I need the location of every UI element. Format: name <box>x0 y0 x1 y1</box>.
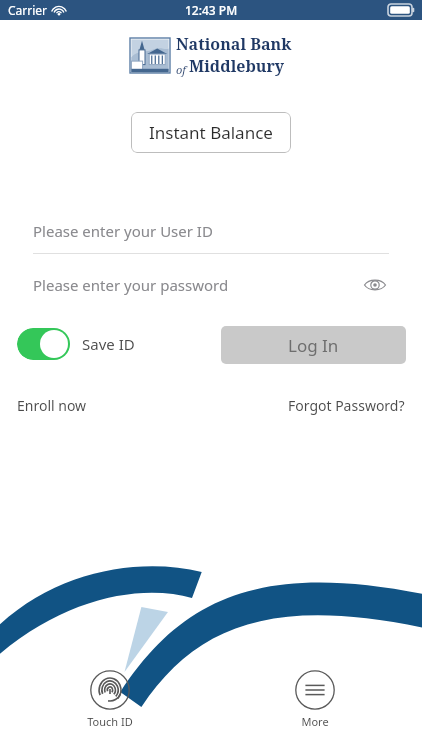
button[interactable]: Log In <box>221 326 406 364</box>
button[interactable]: More <box>283 670 347 729</box>
staticText: Please enter your User ID <box>33 221 213 241</box>
button[interactable]: Enroll now <box>10 392 94 419</box>
staticText: Middlebury <box>189 55 285 77</box>
staticText: Log In <box>288 334 339 357</box>
staticText: Please enter your password <box>33 275 229 295</box>
staticText: Carrier <box>8 2 48 18</box>
button[interactable]: Please enter your User ID <box>0 208 422 254</box>
staticText: of <box>176 62 189 77</box>
staticText: 12:43 PM <box>185 2 238 18</box>
button[interactable]: Show password <box>360 270 390 300</box>
staticText: Instant Balance <box>149 121 273 144</box>
button[interactable]: Save ID <box>17 328 135 360</box>
staticText: More <box>301 714 329 729</box>
staticText: National Bank <box>176 33 292 55</box>
button[interactable]: Forgot Password? <box>281 392 412 419</box>
button[interactable]: Touch ID <box>78 670 142 729</box>
staticText: Save ID <box>82 334 135 354</box>
staticText: Touch ID <box>87 714 133 729</box>
staticText: Forgot Password? <box>288 396 405 415</box>
button[interactable]: Instant Balance <box>131 112 291 153</box>
button[interactable]: Please enter your password <box>0 262 422 308</box>
staticText: Enroll now <box>17 396 87 415</box>
